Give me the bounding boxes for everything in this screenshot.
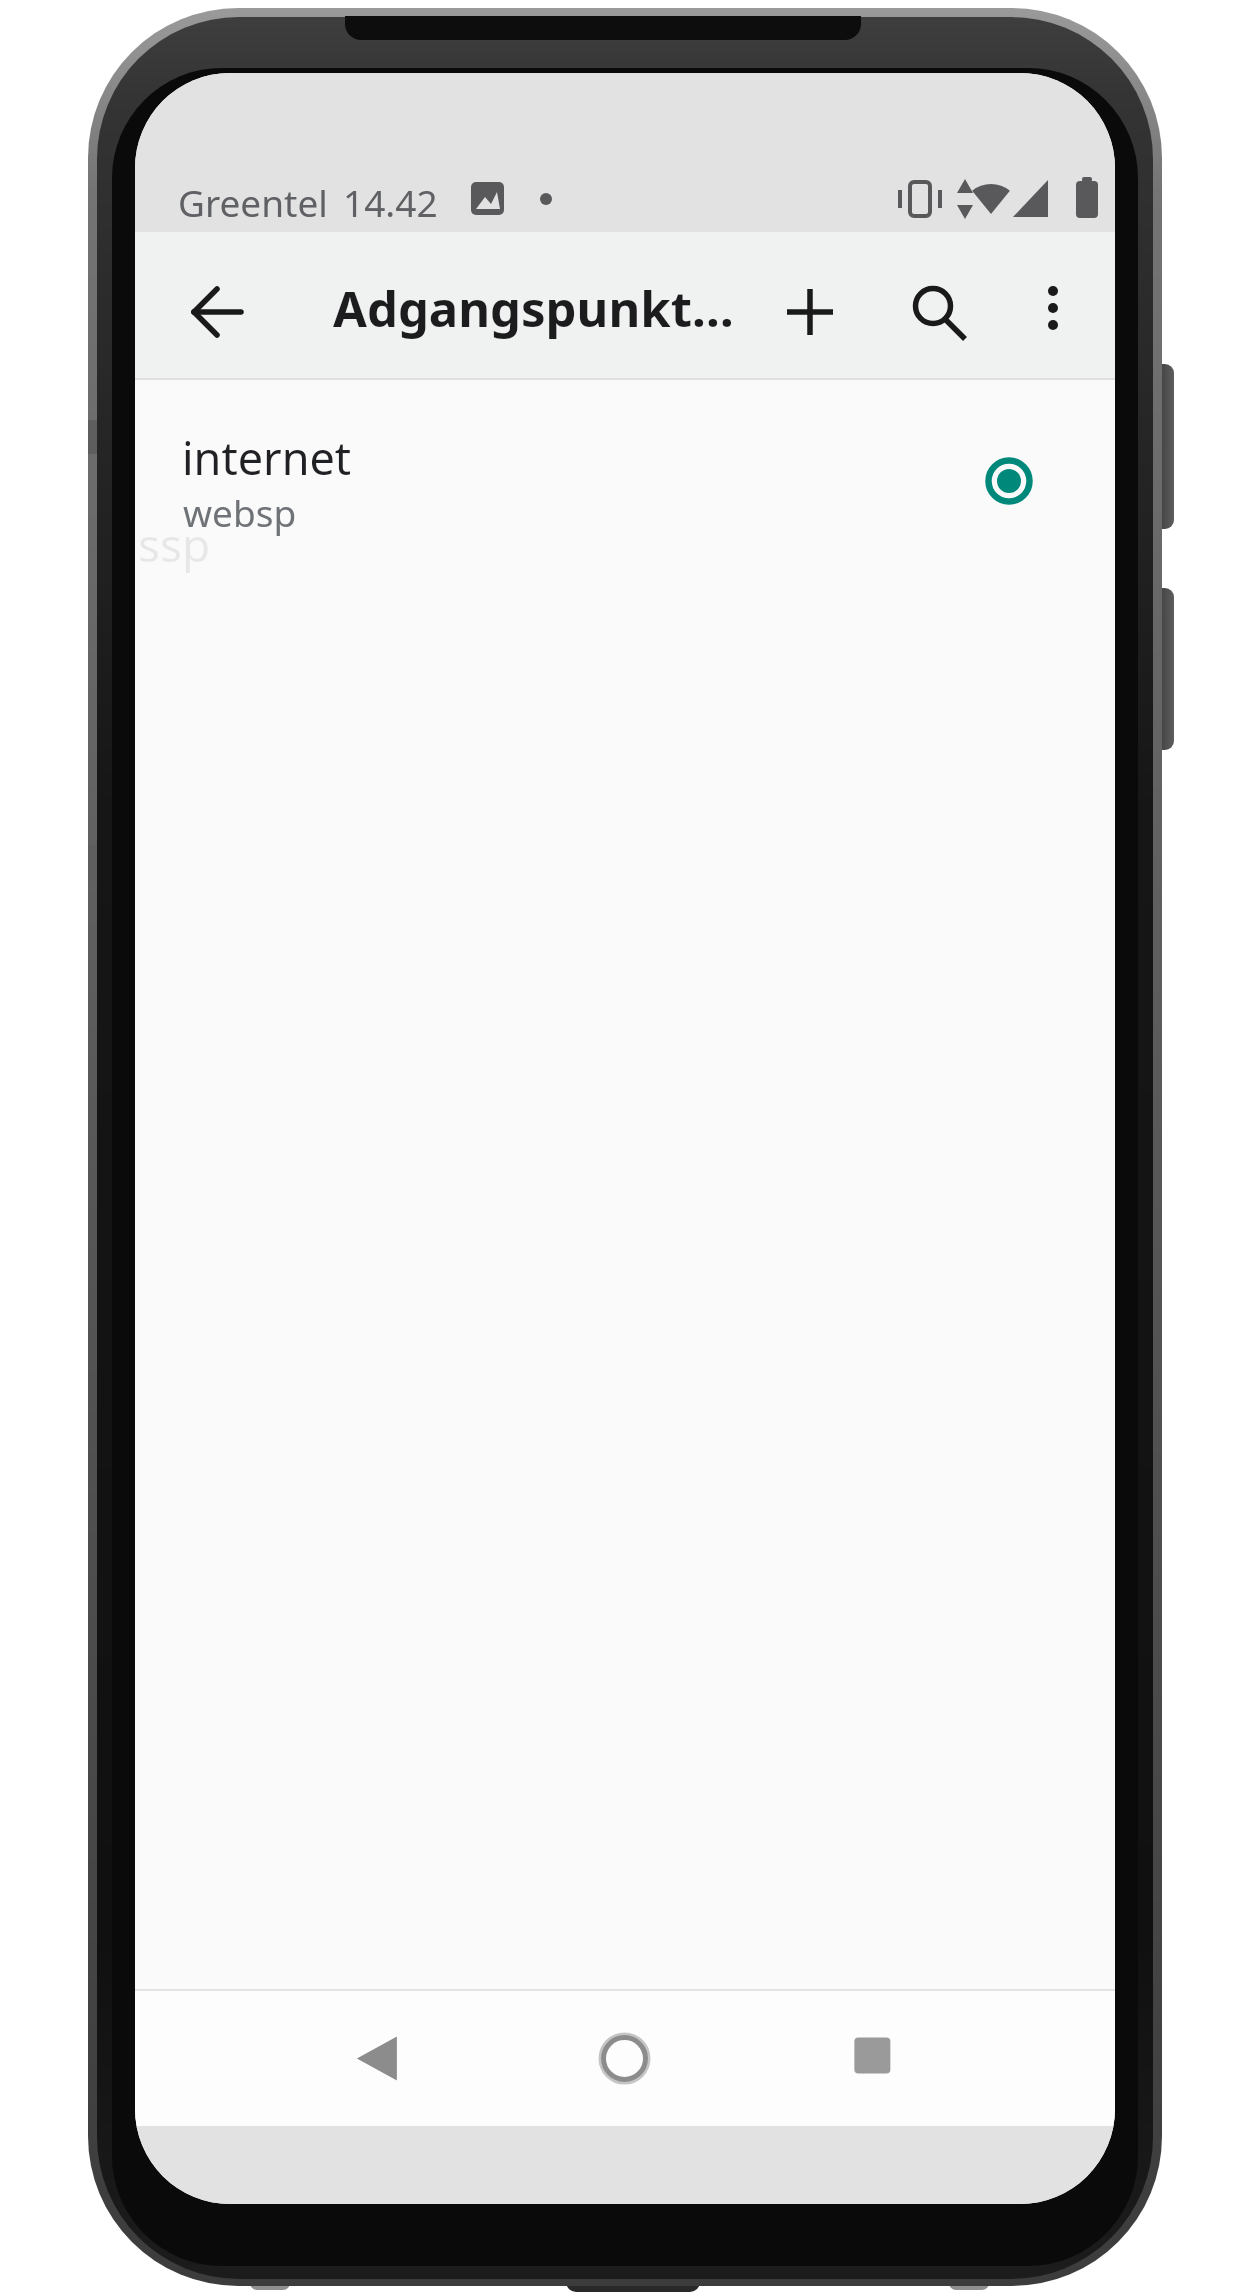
staticText: 14.42 — [343, 177, 438, 227]
button[interactable] — [135, 1991, 461, 2126]
button[interactable]: internet — [135, 380, 1115, 570]
button[interactable] — [788, 1991, 1115, 2126]
button[interactable] — [887, 262, 987, 362]
staticText: internet — [182, 427, 352, 488]
button[interactable] — [167, 262, 267, 362]
staticText: ssp — [138, 513, 211, 576]
staticText: Adgangspunkt… — [333, 275, 734, 342]
staticText: Greentel — [178, 177, 328, 227]
button[interactable] — [461, 1991, 788, 2126]
button[interactable] — [973, 445, 1045, 517]
button[interactable] — [760, 262, 860, 362]
button[interactable] — [1005, 262, 1101, 358]
staticText: websp — [183, 487, 297, 537]
